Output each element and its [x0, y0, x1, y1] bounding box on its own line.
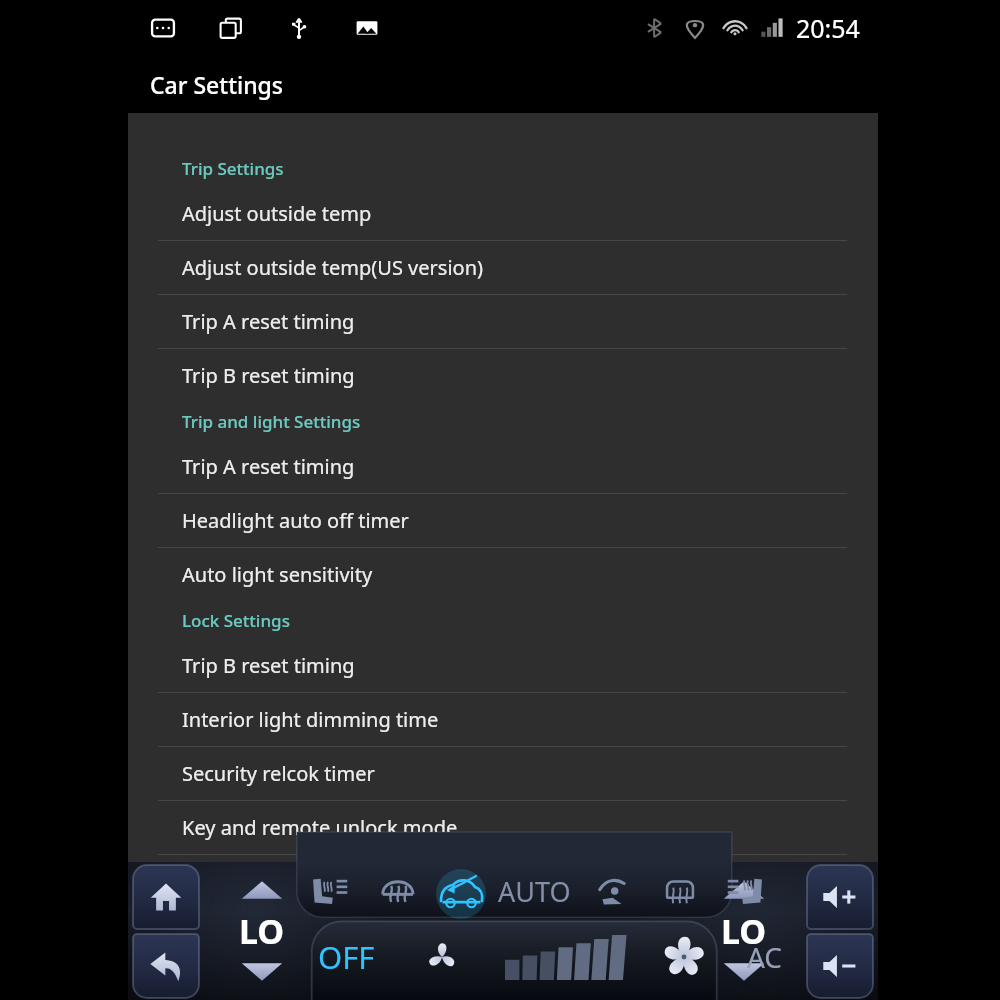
- staticText: Lock Settings: [182, 609, 290, 632]
- staticText: AUTO: [498, 873, 571, 910]
- button[interactable]: Volume up: [806, 864, 874, 930]
- button[interactable]: Adjust outside temp: [128, 187, 878, 240]
- button[interactable]: Headlight auto off timer: [128, 494, 878, 547]
- staticText: LO: [239, 908, 285, 954]
- staticText: Car Settings: [150, 69, 284, 100]
- staticText: Interior light dimming time: [182, 706, 439, 733]
- staticText: Headlight auto off timer: [182, 507, 409, 534]
- staticText: Trip B reset timing: [182, 362, 355, 389]
- button[interactable]: OFF: [316, 936, 377, 978]
- staticText: AC: [747, 938, 783, 976]
- button[interactable]: Fan level: [505, 934, 623, 980]
- button[interactable]: Right temperature up: [716, 874, 772, 906]
- button[interactable]: Max defrost: [372, 866, 422, 916]
- button[interactable]: Left temperature down: [234, 956, 290, 988]
- staticText: Adjust outside temp(US version): [182, 254, 483, 281]
- button[interactable]: Volume down: [806, 933, 874, 999]
- button[interactable]: Rear defrost: [655, 866, 705, 916]
- button[interactable]: Home: [132, 864, 200, 930]
- staticText: Auto light sensitivity: [182, 561, 373, 588]
- button[interactable]: Trip B reset timing: [128, 349, 878, 402]
- staticText: Trip B reset timing: [182, 652, 355, 679]
- button[interactable]: Air recirculation: [436, 866, 486, 916]
- staticText: LO: [721, 908, 767, 954]
- staticText: 20:54: [796, 11, 860, 45]
- button[interactable]: Security relcok timer: [128, 747, 878, 800]
- staticText: Trip A reset timing: [182, 308, 355, 335]
- button[interactable]: Trip B reset timing: [128, 639, 878, 692]
- button[interactable]: Back: [132, 933, 200, 999]
- button[interactable]: Interior light dimming time: [128, 693, 878, 746]
- staticText: Key and remote unlock mode: [182, 814, 458, 841]
- staticText: Security relcok timer: [182, 760, 375, 787]
- button[interactable]: Seat heater left: [304, 866, 354, 916]
- button[interactable]: Fan speed up: [659, 932, 709, 982]
- button[interactable]: Right temperature down: [716, 956, 772, 988]
- staticText: Trip Settings: [182, 157, 284, 180]
- staticText: Trip A reset timing: [182, 453, 355, 480]
- staticText: Trip and light Settings: [182, 410, 361, 433]
- button[interactable]: Adjust outside temp(US version): [128, 241, 878, 294]
- button[interactable]: Left temperature up: [234, 874, 290, 906]
- button[interactable]: Trip A reset timing: [128, 295, 878, 348]
- button[interactable]: Airflow to body: [589, 866, 639, 916]
- button[interactable]: Trip A reset timing: [128, 440, 878, 493]
- button[interactable]: Seat heater right: [721, 866, 771, 916]
- button[interactable]: AUTO: [494, 867, 575, 916]
- staticText: OFF: [318, 936, 375, 978]
- button[interactable]: AC: [745, 938, 785, 976]
- staticText: Adjust outside temp: [182, 200, 372, 227]
- button[interactable]: Key and remote unlock mode: [128, 801, 878, 854]
- button[interactable]: Fan speed down: [417, 932, 467, 982]
- button[interactable]: Auto light sensitivity: [128, 548, 878, 601]
